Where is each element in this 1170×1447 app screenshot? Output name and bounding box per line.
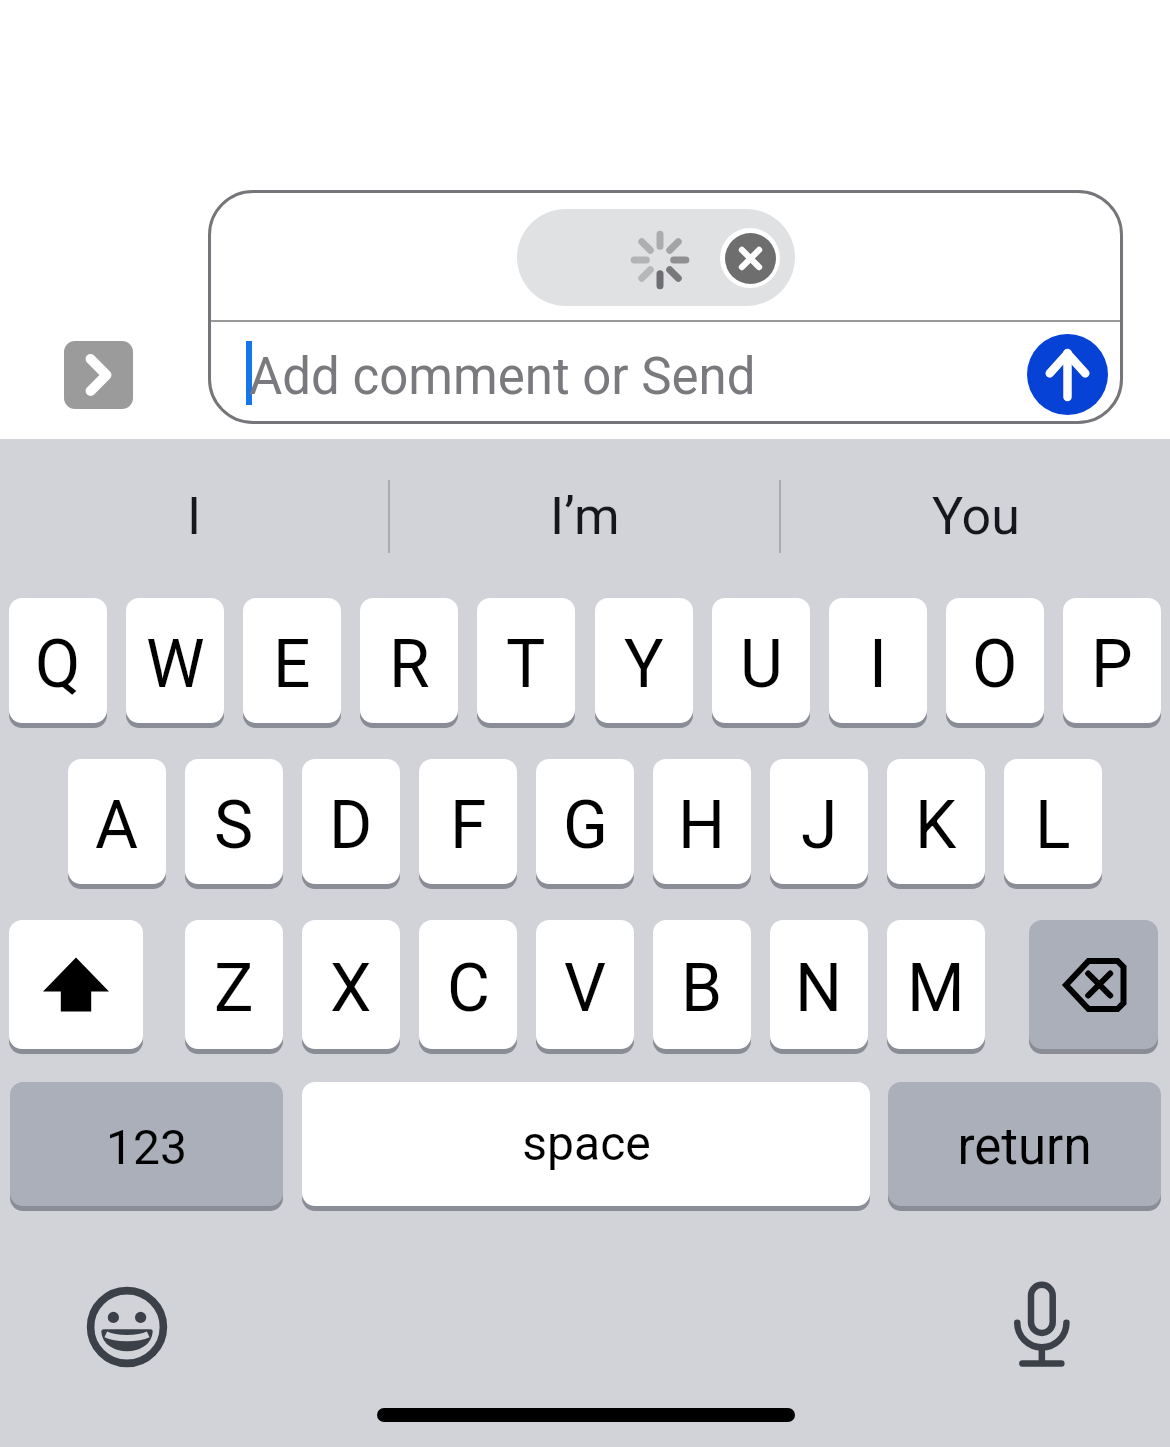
button[interactable]: 123: [10, 1082, 283, 1206]
staticText: F: [450, 787, 487, 864]
button[interactable]: Dictation: [1011, 1278, 1073, 1370]
staticText: You: [932, 486, 1020, 547]
staticText: T: [506, 626, 546, 703]
staticText: P: [1091, 626, 1133, 703]
staticText: L: [1035, 787, 1071, 864]
button[interactable]: J: [770, 759, 868, 884]
button[interactable]: space: [302, 1082, 870, 1206]
staticText: W: [146, 626, 205, 703]
button[interactable]: G: [536, 759, 634, 884]
staticText: B: [681, 950, 723, 1027]
staticText: space: [522, 1115, 651, 1171]
staticText: X: [330, 950, 372, 1027]
staticText: H: [678, 787, 726, 864]
button[interactable]: Expand: [64, 341, 133, 409]
button[interactable]: N: [770, 920, 868, 1049]
staticText: I’m: [550, 486, 620, 547]
button[interactable]: You: [781, 439, 1170, 593]
button[interactable]: Emoji: [83, 1283, 171, 1371]
button[interactable]: I: [0, 439, 388, 593]
staticText: A: [95, 787, 139, 864]
staticText: V: [564, 950, 607, 1027]
button[interactable]: H: [653, 759, 751, 884]
staticText: O: [972, 626, 1018, 703]
staticText: D: [329, 787, 373, 864]
button[interactable]: Backspace: [1029, 920, 1158, 1049]
button[interactable]: R: [360, 598, 458, 723]
button[interactable]: L: [1004, 759, 1102, 884]
button[interactable]: B: [653, 920, 751, 1049]
staticText: 123: [106, 1119, 187, 1175]
button[interactable]: T: [477, 598, 575, 723]
button[interactable]: X: [302, 920, 400, 1049]
button[interactable]: return: [888, 1082, 1161, 1206]
button[interactable]: I: [829, 598, 927, 723]
staticText: M: [907, 950, 965, 1027]
staticText: G: [563, 787, 608, 864]
button[interactable]: D: [302, 759, 400, 884]
button[interactable]: O: [946, 598, 1044, 723]
button[interactable]: E: [243, 598, 341, 723]
button[interactable]: P: [1063, 598, 1161, 723]
staticText: Y: [624, 626, 664, 703]
button[interactable]: W: [126, 598, 224, 723]
staticText: return: [957, 1117, 1092, 1177]
staticText: I: [869, 626, 887, 703]
button[interactable]: Y: [595, 598, 693, 723]
button[interactable]: M: [887, 920, 985, 1049]
button[interactable]: Q: [9, 598, 107, 723]
staticText: N: [795, 950, 843, 1027]
button[interactable]: Send: [1027, 334, 1108, 415]
button[interactable]: K: [887, 759, 985, 884]
staticText: C: [447, 950, 490, 1027]
staticText: Q: [35, 626, 81, 703]
staticText: S: [214, 787, 254, 864]
staticText: J: [801, 787, 838, 864]
button[interactable]: I’m: [390, 439, 779, 593]
button[interactable]: C: [419, 920, 517, 1049]
staticText: R: [389, 626, 430, 703]
staticText: I: [187, 486, 202, 547]
button[interactable]: U: [712, 598, 810, 723]
staticText: Add comment or Send: [249, 347, 756, 407]
button[interactable]: V: [536, 920, 634, 1049]
button[interactable]: A: [68, 759, 166, 884]
button[interactable]: Cancel: [720, 228, 780, 288]
button[interactable]: Z: [185, 920, 283, 1049]
staticText: E: [273, 626, 311, 703]
staticText: U: [740, 626, 783, 703]
staticText: K: [915, 787, 957, 864]
staticText: Z: [214, 950, 254, 1027]
button[interactable]: S: [185, 759, 283, 884]
button[interactable]: F: [419, 759, 517, 884]
button[interactable]: Shift: [9, 920, 143, 1049]
